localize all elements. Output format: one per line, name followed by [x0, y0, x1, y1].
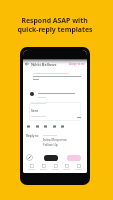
button[interactable]: Tab 3: [63, 162, 70, 170]
button[interactable]: Tab 4: [75, 162, 82, 170]
other: Back: [25, 62, 29, 66]
button[interactable]: Tab 2: [52, 162, 59, 170]
button[interactable]: Format 3: [53, 125, 56, 128]
staticText: Respond ASAP with: [21, 16, 88, 25]
staticText: Follow Up: [43, 143, 58, 147]
button[interactable]: Back: [23, 61, 87, 67]
staticText: Reply to: [26, 134, 39, 138]
staticText: Sent: [31, 108, 39, 113]
button[interactable]: Tab 0: [28, 162, 35, 170]
button[interactable]: [44, 155, 58, 161]
staticText: quick-reply templates: [17, 25, 93, 34]
button[interactable]: [67, 155, 81, 161]
staticText: Nikki Bellows: [31, 62, 57, 67]
button[interactable]: Format 0: [27, 125, 30, 128]
button[interactable]: Format 4: [61, 125, 64, 128]
staticText: Initial Response: [43, 138, 67, 142]
staticText: Assign to me: [69, 62, 85, 66]
button[interactable]: Format 1: [36, 125, 39, 128]
button[interactable]: Format 2: [44, 125, 47, 128]
button[interactable]: Tab 1: [40, 162, 47, 170]
button[interactable]: Voice: [26, 154, 33, 161]
